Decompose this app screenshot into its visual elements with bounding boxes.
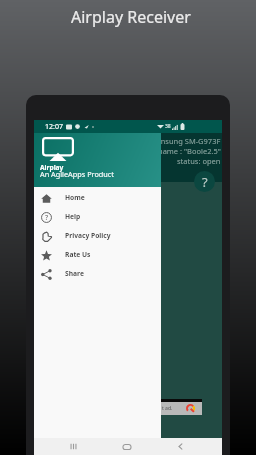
- staticText: 12:07: [45, 122, 63, 132]
- staticText: Privacy Policy: [65, 231, 111, 240]
- staticText: t ad.: [162, 405, 173, 412]
- button[interactable]: Privacy Policy: [34, 226, 161, 245]
- button[interactable]: Home: [121, 441, 132, 452]
- staticText: Help: [65, 212, 81, 221]
- staticText: ?: [202, 173, 208, 191]
- button[interactable]: Home: [34, 188, 161, 207]
- staticText: Rate Us: [65, 250, 91, 259]
- button[interactable]: ?: [34, 207, 161, 226]
- staticText: Home: [65, 193, 85, 202]
- staticText: 38: [165, 123, 171, 130]
- staticText: name : "Boole2.5": [158, 146, 221, 156]
- staticText: Airplay: [40, 163, 64, 172]
- staticText: Share: [65, 269, 84, 278]
- staticText: An AgileApps Product: [40, 169, 114, 179]
- staticText: status: open: [177, 156, 221, 166]
- button[interactable]: Rate Us: [34, 245, 161, 264]
- button[interactable]: Back: [175, 441, 186, 452]
- button[interactable]: Share: [34, 264, 161, 283]
- staticText: Samsung SM-G973F: [150, 136, 221, 146]
- staticText: Airplay Receiver: [71, 6, 191, 28]
- button[interactable]: Recents: [68, 441, 79, 452]
- button[interactable]: Help: [194, 171, 215, 192]
- staticText: ?: [45, 213, 49, 223]
